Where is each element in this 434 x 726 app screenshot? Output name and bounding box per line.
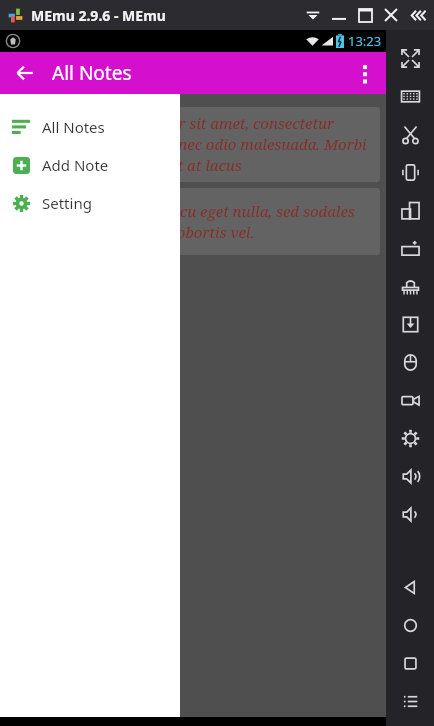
button[interactable]: Hide toolbar bbox=[404, 0, 434, 30]
staticText: Lorem ipsum dolor sit amet, consectetur … bbox=[16, 113, 370, 176]
button[interactable]: Setting bbox=[0, 184, 180, 222]
staticText: Vestibulum lacinia arcu eget nulla, sed … bbox=[16, 201, 370, 243]
button[interactable]: Cut bbox=[392, 116, 428, 152]
button[interactable]: Volume up bbox=[392, 458, 428, 494]
staticText: Setting bbox=[42, 193, 92, 213]
button[interactable]: Back bbox=[4, 52, 46, 94]
button[interactable]: More options bbox=[344, 52, 386, 94]
button[interactable]: Fullscreen bbox=[392, 40, 428, 76]
button[interactable]: Install APK bbox=[392, 230, 428, 266]
button[interactable]: Maximize bbox=[352, 2, 378, 28]
button[interactable]: Volume down bbox=[392, 496, 428, 532]
button[interactable]: Collapse bbox=[300, 2, 326, 28]
button[interactable]: Minimize bbox=[326, 2, 352, 28]
staticText: 13:23 bbox=[348, 32, 382, 50]
button[interactable]: Record bbox=[392, 382, 428, 418]
button[interactable]: Recents bbox=[391, 644, 429, 682]
button[interactable]: Vestibulum lacinia arcu eget nulla, sed … bbox=[6, 188, 380, 255]
staticText: MEmu 2.9.6 - MEmu bbox=[31, 6, 166, 25]
button[interactable]: Home bbox=[391, 606, 429, 644]
button[interactable]: Mouse bbox=[392, 344, 428, 380]
button[interactable]: Back bbox=[391, 568, 429, 606]
button[interactable]: Settings bbox=[392, 420, 428, 456]
button[interactable]: Add Note bbox=[0, 146, 180, 184]
button[interactable]: Keymap bbox=[392, 268, 428, 304]
staticText: Add Note bbox=[42, 155, 109, 175]
button[interactable]: Close bbox=[378, 2, 404, 28]
button[interactable]: Keyboard bbox=[392, 78, 428, 114]
button[interactable]: Lorem ipsum dolor sit amet, consectetur … bbox=[6, 107, 380, 182]
staticText: All Notes bbox=[42, 117, 105, 137]
button[interactable]: Import bbox=[392, 306, 428, 342]
button[interactable]: Menu bbox=[391, 682, 429, 720]
button[interactable]: Multi window bbox=[392, 192, 428, 228]
button[interactable]: Shake bbox=[392, 154, 428, 190]
button[interactable]: All Notes bbox=[0, 108, 180, 146]
staticText: All Notes bbox=[52, 60, 132, 86]
